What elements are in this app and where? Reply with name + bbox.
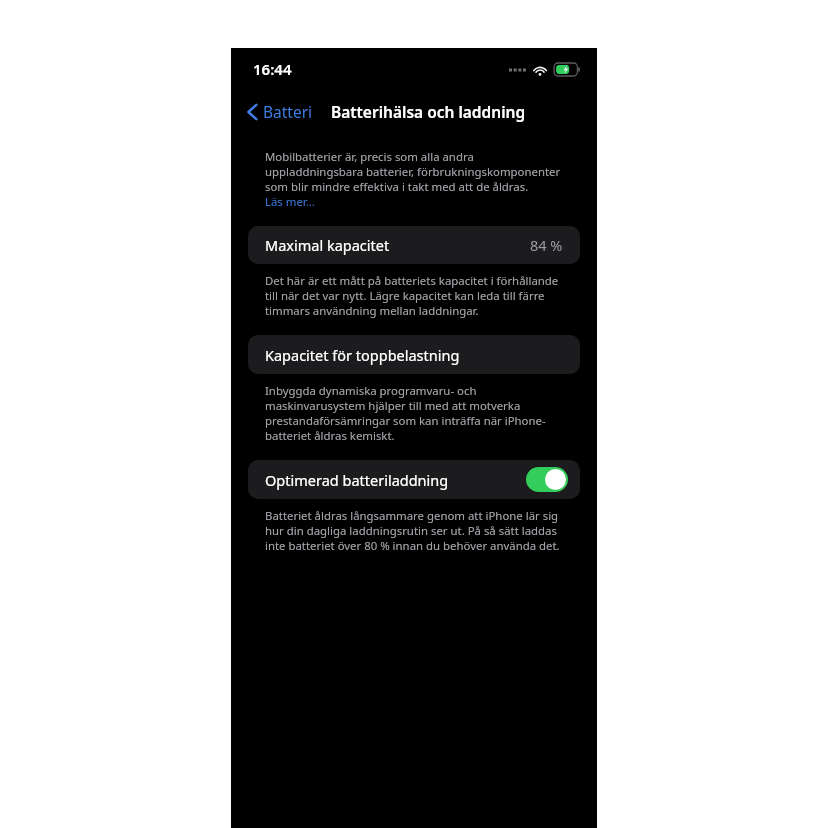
button[interactable]: Optimerad batteriladdning: [248, 460, 580, 499]
button[interactable]: Maximal kapacitet: [248, 226, 580, 264]
staticText: Optimerad batteriladdning: [265, 470, 449, 490]
staticText: 84 %: [530, 235, 563, 255]
staticText: Mobilbatterier är, precis som alla andra…: [265, 149, 561, 194]
staticText: 16:44: [253, 59, 292, 79]
staticText: Batteri: [263, 101, 313, 122]
staticText: Batteriet åldras långsammare genom att i…: [265, 508, 560, 553]
staticText: Maximal kapacitet: [265, 235, 390, 255]
button[interactable]: Kapacitet för toppbelastning: [248, 335, 580, 374]
staticText: Det här är ett mått på batteriets kapaci…: [265, 273, 559, 318]
staticText: Batterihälsa och laddning: [331, 101, 526, 122]
staticText: Inbyggda dynamiska programvaru- och mask…: [265, 383, 546, 443]
button[interactable]: Läs mer...: [265, 194, 315, 210]
button[interactable]: Optimerad batteriladdning på: [526, 467, 568, 492]
button[interactable]: Batteri: [243, 97, 317, 126]
staticText: Kapacitet för toppbelastning: [265, 345, 460, 365]
